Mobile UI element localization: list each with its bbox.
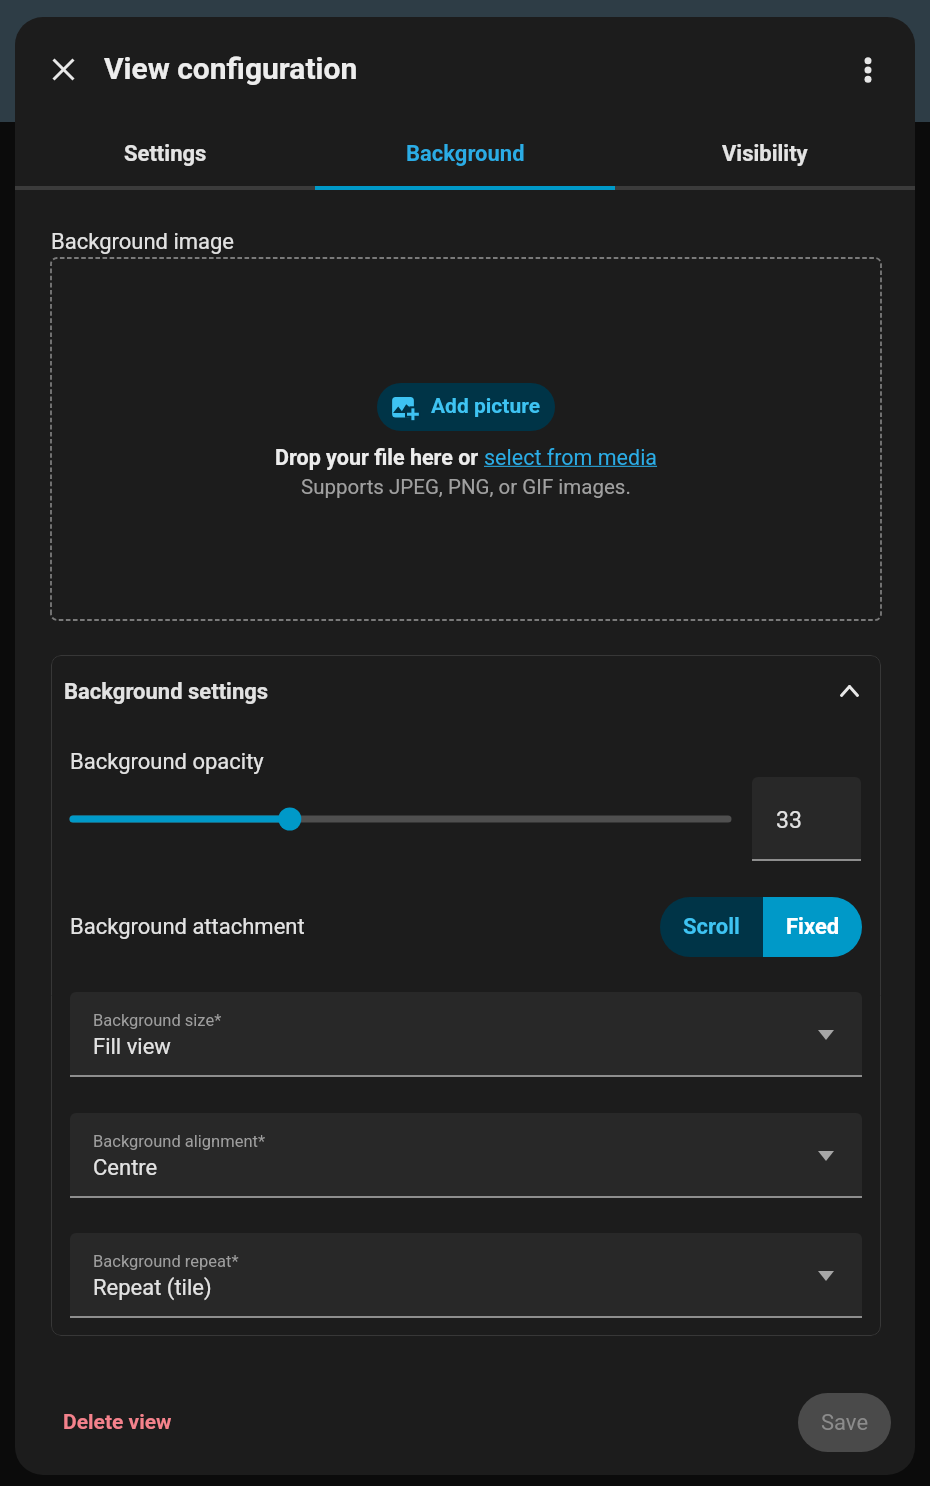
button[interactable]: Background alignment* <box>70 1113 862 1198</box>
staticText: 33 <box>776 807 802 834</box>
staticText: Supports JPEG, PNG, or GIF images. <box>301 475 631 499</box>
staticText: Background <box>406 141 525 167</box>
button[interactable]: Scroll <box>660 897 763 957</box>
button[interactable]: Background repeat* <box>70 1233 862 1318</box>
staticText: Background attachment <box>70 914 305 940</box>
button[interactable]: select from media <box>484 445 658 470</box>
staticText: Background opacity <box>70 749 264 775</box>
staticText: View configuration <box>104 51 358 86</box>
staticText: Visibility <box>722 141 808 167</box>
button[interactable]: 33 <box>752 777 861 861</box>
staticText: Settings <box>124 141 207 167</box>
staticText: Drop your file here or <box>275 445 484 470</box>
staticText: Delete view <box>63 1410 172 1435</box>
staticText: Background size* <box>93 1011 222 1030</box>
button[interactable]: Visibility <box>615 105 915 190</box>
button[interactable]: Add picture <box>377 383 555 431</box>
button[interactable]: Fixed <box>763 897 862 957</box>
button[interactable]: Close <box>37 43 89 95</box>
staticText: Repeat (tile) <box>93 1275 212 1301</box>
staticText: Background repeat* <box>93 1252 239 1271</box>
button[interactable]: Delete view <box>51 1400 184 1445</box>
button[interactable]: More options <box>842 44 894 96</box>
staticText: Fill view <box>93 1034 171 1060</box>
button[interactable]: Background settings <box>51 655 881 727</box>
staticText: Background image <box>51 229 235 255</box>
button[interactable]: Save <box>798 1393 891 1452</box>
button[interactable]: Settings <box>15 105 315 190</box>
staticText: Add picture <box>431 394 540 419</box>
staticText: Save <box>821 1410 869 1436</box>
staticText: Background alignment* <box>93 1132 266 1151</box>
staticText: Scroll <box>683 914 740 940</box>
staticText: Centre <box>93 1155 158 1181</box>
staticText: Fixed <box>786 914 840 940</box>
button[interactable]: Background <box>315 105 615 190</box>
button[interactable]: Background size* <box>70 992 862 1077</box>
staticText: Background settings <box>64 679 269 705</box>
